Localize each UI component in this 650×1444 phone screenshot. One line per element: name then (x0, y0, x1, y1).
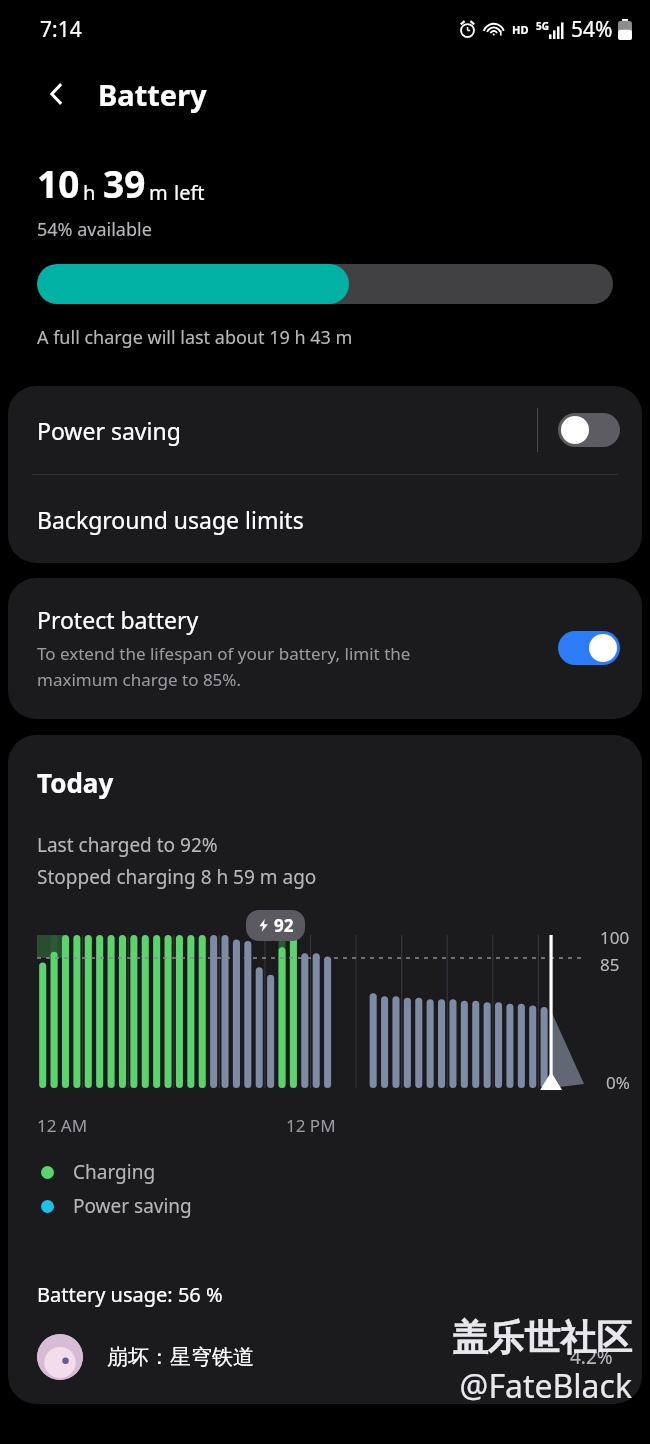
staticText: 100 (600, 926, 630, 949)
staticText: 12 AM (37, 1114, 88, 1137)
staticText: Battery (98, 75, 207, 114)
staticText: 0% (606, 1071, 630, 1094)
staticText: 85 (600, 953, 620, 976)
staticText: 54% (571, 15, 613, 44)
staticText: @FateBlack (459, 1364, 632, 1408)
staticText: Background usage limits (37, 504, 304, 535)
staticText: Stopped charging 8 h 59 m ago (37, 864, 317, 890)
button[interactable]: Back (34, 71, 80, 117)
staticText: Battery usage: 56 % (37, 1281, 223, 1308)
staticText: m (149, 179, 168, 206)
staticText: HD (512, 22, 529, 37)
staticText: 12 PM (286, 1114, 336, 1137)
staticText: 7:14 (40, 15, 82, 44)
staticText: Protect battery (37, 604, 199, 635)
staticText: 崩坏：星穹铁道 (107, 1344, 254, 1370)
staticText: A full charge will last about 19 h 43 m (37, 325, 353, 350)
button[interactable] (558, 413, 620, 447)
staticText: Power saving (37, 415, 181, 446)
staticText: left (174, 179, 205, 206)
staticText: Power saving (73, 1193, 192, 1219)
staticText: 4.2% (570, 1344, 613, 1370)
staticText: Today (37, 765, 114, 800)
staticText: 盖乐世社区 (452, 1315, 632, 1360)
staticText: 5G (536, 19, 549, 33)
staticText: 39 (103, 158, 146, 208)
staticText: Charging (73, 1159, 156, 1185)
staticText: Last charged to 92% (37, 832, 218, 858)
staticText: 92 (274, 914, 294, 937)
button[interactable] (558, 631, 620, 665)
staticText: To extend the lifespan of your battery, … (37, 642, 411, 691)
button[interactable]: 崩坏：星穹铁道 (8, 1334, 642, 1380)
button[interactable]: Background usage limits (8, 475, 642, 563)
staticText: h (83, 179, 96, 206)
button[interactable]: Power saving (8, 386, 642, 474)
staticText: 54% available (37, 217, 152, 242)
staticText: 10 (37, 158, 80, 208)
button[interactable]: Protect battery (8, 578, 642, 719)
